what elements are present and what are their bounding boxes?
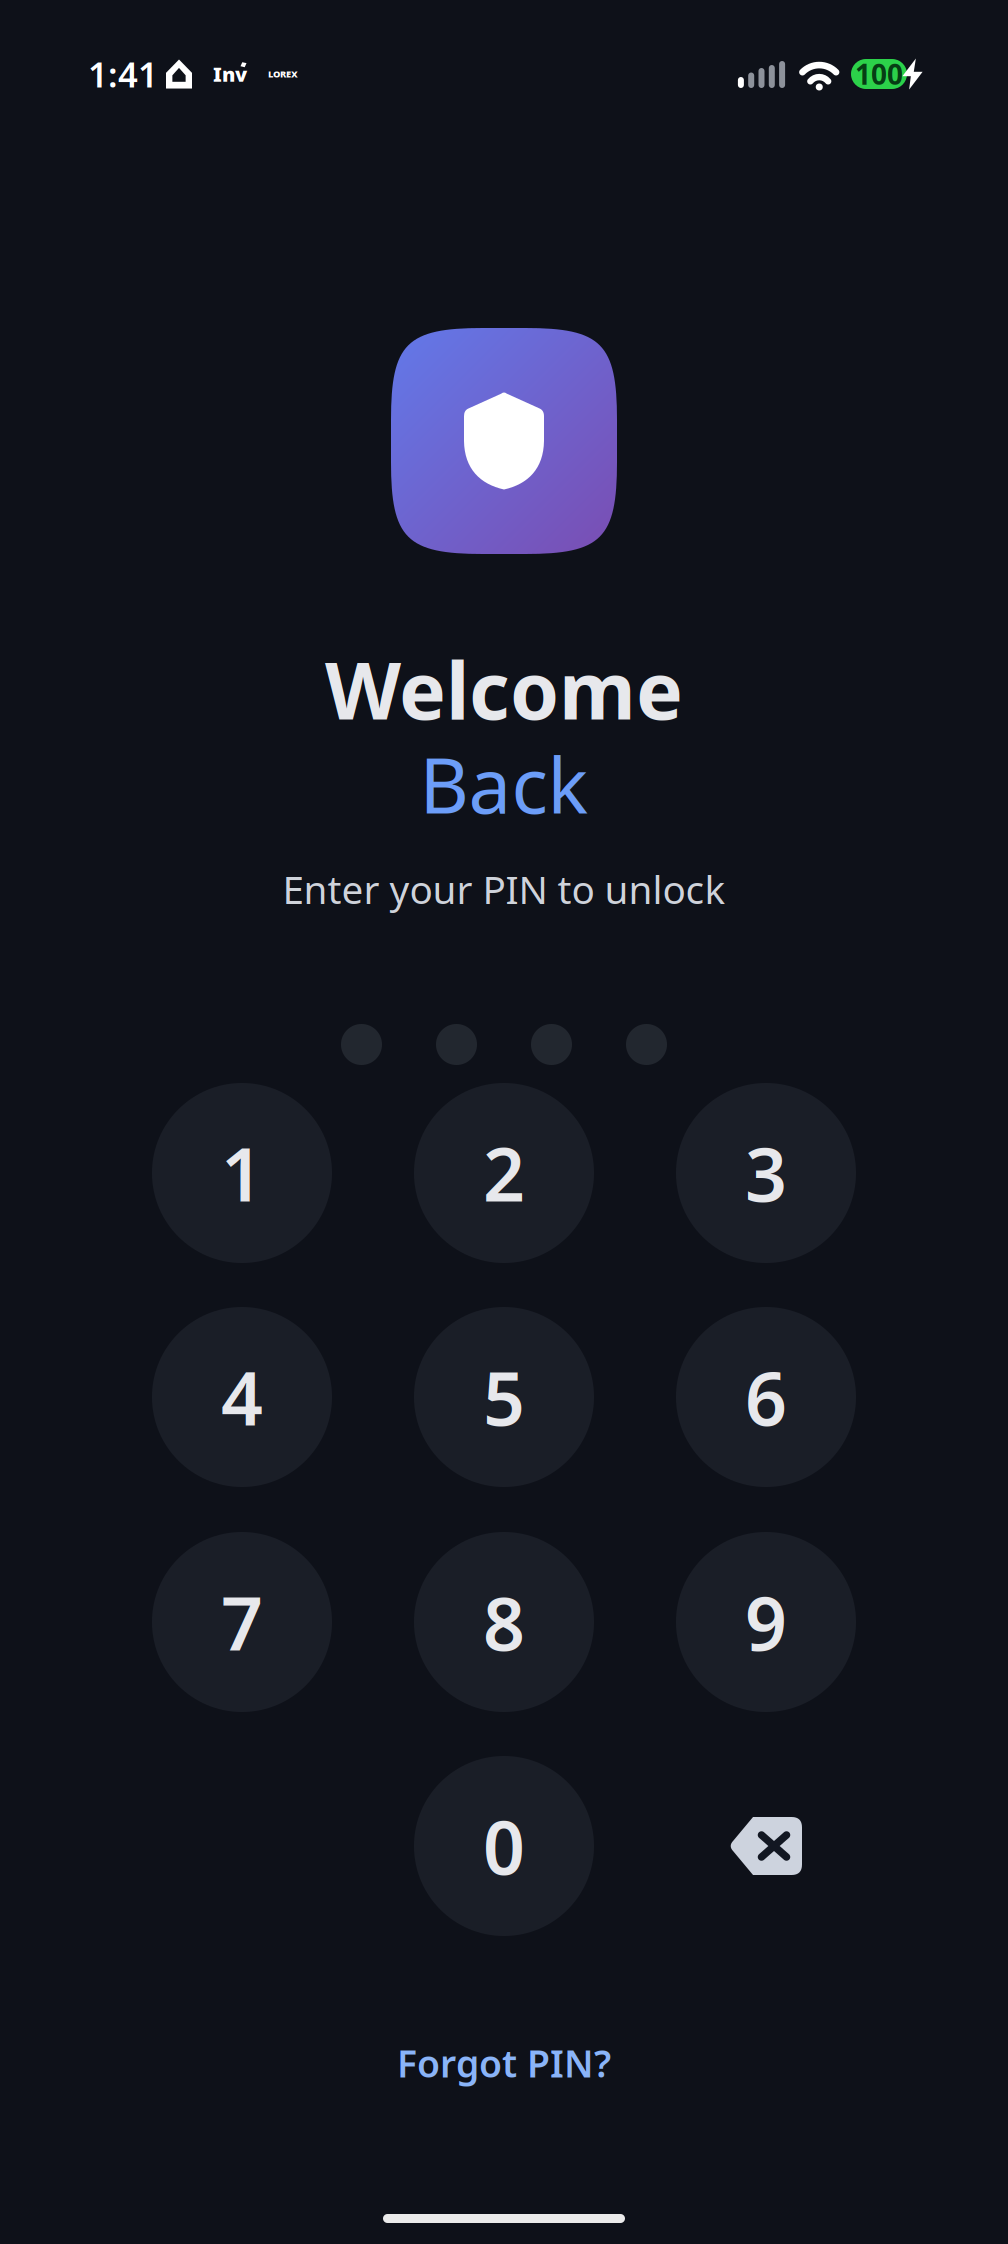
button[interactable]: 0: [414, 1756, 594, 1936]
staticText: 9: [745, 1573, 787, 1671]
staticText: 6: [745, 1348, 787, 1446]
staticText: 7: [221, 1573, 263, 1671]
staticText: 100: [855, 55, 903, 93]
staticText: Enter your PIN to unlock: [282, 863, 725, 915]
staticText: 1: [221, 1124, 263, 1222]
staticText: 0: [483, 1797, 525, 1895]
button[interactable]: 8: [414, 1532, 594, 1712]
button[interactable]: 7: [152, 1532, 332, 1712]
button[interactable]: Forgot PIN?: [354, 2025, 654, 2101]
staticText: 8: [483, 1573, 525, 1671]
staticText: Forgot PIN?: [397, 2038, 611, 2088]
button[interactable]: 3: [676, 1083, 856, 1263]
staticText: Inv: [213, 61, 247, 87]
button[interactable]: 1: [152, 1083, 332, 1263]
staticText: 5: [483, 1348, 525, 1446]
staticText: 2: [483, 1124, 525, 1222]
staticText: Back: [419, 733, 588, 834]
button[interactable]: 2: [414, 1083, 594, 1263]
button[interactable]: 4: [152, 1307, 332, 1487]
staticText: 1:41: [88, 51, 158, 97]
staticText: 4: [221, 1348, 263, 1446]
button[interactable]: 9: [676, 1532, 856, 1712]
button[interactable]: 5: [414, 1307, 594, 1487]
button[interactable]: 6: [676, 1307, 856, 1487]
button[interactable]: Delete: [676, 1756, 856, 1936]
staticText: 3: [745, 1124, 787, 1222]
staticText: LOREX: [268, 68, 298, 80]
staticText: Welcome: [325, 637, 683, 741]
